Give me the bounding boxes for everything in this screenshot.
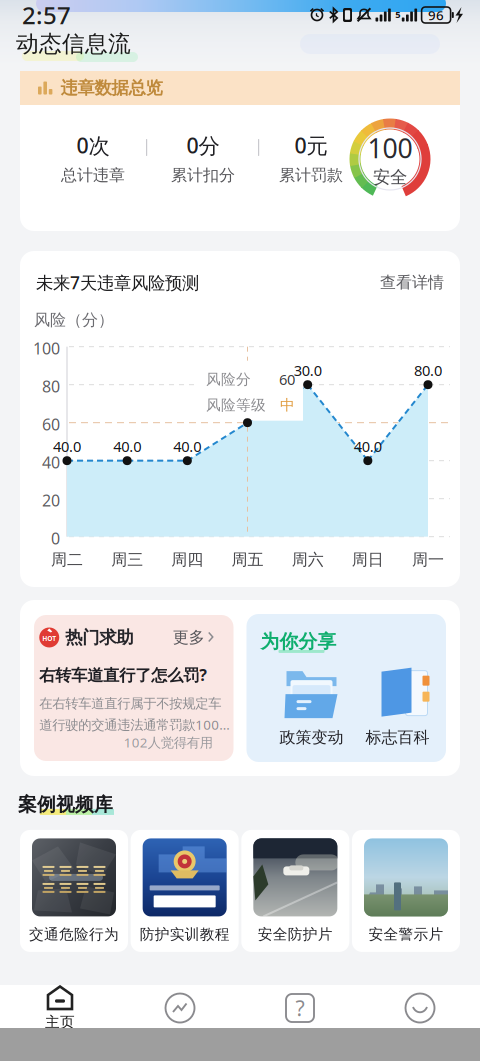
staticText: 为你分享	[260, 630, 336, 653]
staticText: 政策变动	[279, 728, 343, 747]
button[interactable]: 防护实训教程	[131, 830, 239, 952]
staticText: 0次	[76, 131, 109, 159]
staticText: 总计违章	[61, 165, 125, 185]
button[interactable]: 安全警示片	[352, 830, 460, 952]
staticText: 风险（分）	[34, 310, 114, 330]
staticText: 未来7天违章风险预测	[36, 271, 199, 294]
staticText: 40	[42, 452, 60, 473]
staticText: 周三	[111, 550, 143, 569]
staticText: 80.0	[414, 361, 442, 380]
staticText: 0分	[186, 131, 219, 159]
button[interactable]: 消息	[120, 987, 240, 1029]
staticText: 96	[428, 6, 444, 24]
staticText: 防护实训教程	[140, 925, 230, 943]
staticText: 案例视频库	[18, 793, 113, 816]
staticText: 周六	[292, 550, 324, 569]
button[interactable]: 安全防护片	[241, 830, 349, 952]
staticText: 累计罚款	[279, 165, 343, 185]
staticText: 5	[395, 8, 400, 20]
staticText: 在右转车道直行属于不按规定车	[39, 695, 221, 712]
staticText: 0	[51, 528, 60, 549]
staticText: 违章数据总览	[60, 77, 162, 99]
staticText: 中	[280, 396, 295, 414]
staticText: 更多	[173, 628, 205, 647]
staticText: 周日	[352, 550, 384, 569]
staticText: 动态信息流	[16, 30, 131, 58]
staticText: ?	[295, 994, 304, 1022]
button[interactable]: 主页	[0, 985, 120, 1031]
staticText: 标志百科	[365, 728, 429, 747]
staticText: 周五	[231, 550, 263, 569]
staticText: 风险分	[206, 370, 251, 388]
staticText: 102人觉得有用	[124, 733, 213, 751]
staticText: 30.0	[294, 361, 322, 380]
staticText: 60	[42, 414, 60, 435]
staticText: 安全警示片	[368, 925, 443, 943]
staticText: 交通危险行为	[29, 925, 119, 943]
staticText: 安全	[373, 167, 407, 188]
staticText: 0元	[294, 131, 327, 159]
staticText: 40.0	[354, 437, 382, 456]
staticText: 热门求助	[65, 627, 133, 648]
staticText: 2:57	[22, 0, 71, 31]
staticText: 主页	[45, 1013, 75, 1031]
button[interactable]: 标志百科	[354, 668, 440, 747]
staticText: 100	[367, 130, 412, 165]
staticText: 周一	[412, 550, 444, 569]
staticText: 安全防护片	[258, 925, 333, 943]
button[interactable]: 政策变动	[268, 668, 354, 747]
staticText: 40.0	[173, 437, 201, 456]
staticText: 60	[279, 370, 295, 389]
button[interactable]: 帮助	[240, 987, 360, 1029]
button[interactable]: 我的	[360, 987, 480, 1029]
staticText: HOT	[42, 634, 56, 643]
staticText: 右转车道直行了怎么罚?	[39, 664, 207, 685]
staticText: 100	[33, 338, 60, 359]
staticText: 20	[42, 490, 60, 511]
button[interactable]: 交通危险行为	[20, 830, 128, 952]
staticText: 查看详情	[380, 273, 444, 292]
staticText: 40.0	[113, 437, 141, 456]
staticText: 40.0	[53, 437, 81, 456]
staticText: 80	[42, 376, 60, 397]
staticText: 周四	[171, 550, 203, 569]
button[interactable]: 查看详情	[380, 273, 444, 292]
staticText: 道行驶的交通违法通常罚款100…	[39, 716, 230, 733]
staticText: 风险等级	[206, 396, 266, 414]
staticText: 累计扣分	[171, 165, 235, 185]
staticText: 周二	[51, 550, 83, 569]
button[interactable]: 更多	[173, 628, 215, 647]
